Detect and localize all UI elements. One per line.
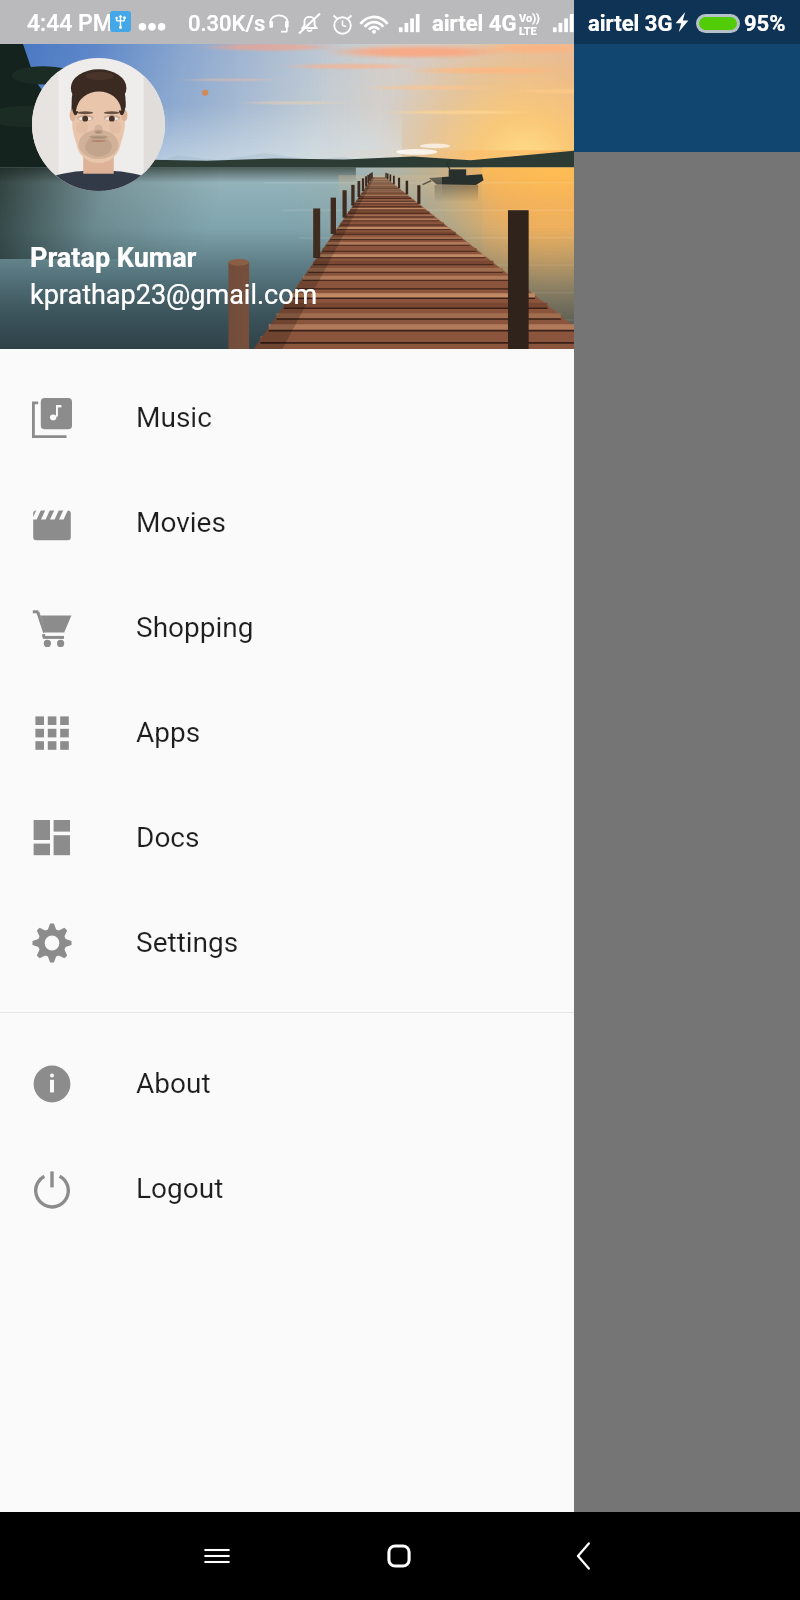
staticText: Pratap Kumar [30, 242, 197, 274]
staticText: LTE [519, 25, 537, 38]
button[interactable]: Home [355, 1512, 443, 1600]
staticText: 4:44 PM [27, 10, 113, 37]
staticText: Shopping [136, 611, 254, 644]
button[interactable]: Movies [0, 470, 574, 575]
button[interactable]: Apps [0, 680, 574, 785]
staticText: Logout [136, 1172, 224, 1205]
button[interactable]: Settings [0, 890, 574, 995]
staticText: Settings [136, 926, 239, 959]
button[interactable]: Docs [0, 785, 574, 890]
staticText: Music [136, 401, 212, 434]
button[interactable]: Shopping [0, 575, 574, 680]
staticText: airtel 3G [588, 11, 673, 37]
staticText: 95% [744, 11, 786, 37]
button[interactable]: Back [540, 1512, 628, 1600]
staticText: kprathap23@gmail.com [30, 279, 318, 311]
staticText: Vo)) [519, 12, 540, 25]
staticText: Apps [136, 716, 201, 749]
staticText: Movies [136, 506, 226, 539]
button[interactable]: About [0, 1031, 574, 1136]
staticText: Docs [136, 821, 200, 854]
staticText: About [136, 1067, 211, 1100]
button[interactable]: Music [0, 365, 574, 470]
staticText: airtel 4G [432, 11, 517, 37]
button[interactable]: Recents [173, 1512, 261, 1600]
button[interactable]: Logout [0, 1136, 574, 1241]
staticText: 0.30K/s [188, 11, 266, 37]
